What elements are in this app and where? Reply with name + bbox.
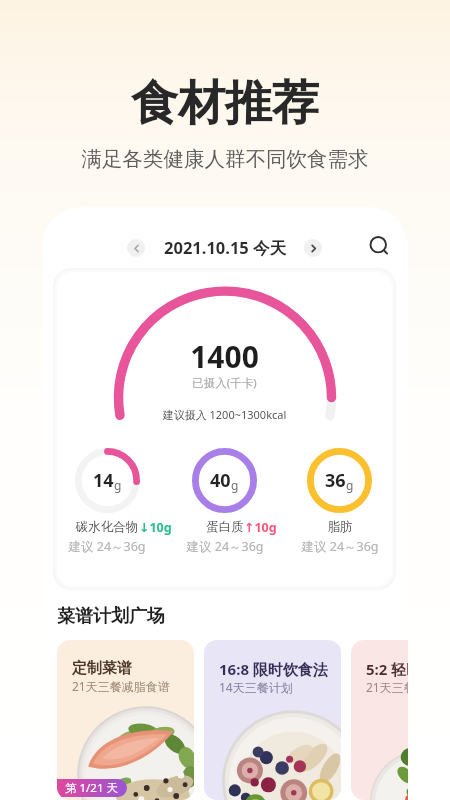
button[interactable]: Next day — [304, 239, 322, 257]
staticText: 建议摄入 1200~1300kcal — [57, 407, 392, 422]
staticText: 已摄入(千卡) — [57, 375, 392, 391]
staticText: 21天三餐减脂食谱 — [72, 678, 170, 694]
staticText: 定制菜谱 — [72, 659, 132, 678]
staticText: g — [231, 477, 239, 493]
staticText: 满足各类健康人群不同饮食需求 — [0, 146, 450, 172]
staticText: ↓10g — [139, 519, 172, 536]
staticText: 14天三餐计划 — [219, 679, 293, 695]
staticText: 建议 24～36g — [165, 538, 285, 555]
staticText: 第 1/21 天 — [65, 780, 118, 796]
staticText: 36 — [325, 468, 346, 493]
staticText: 5:2 轻断 — [366, 659, 408, 679]
staticText: 1400 — [57, 336, 392, 377]
staticText: 菜谱计划广场 — [57, 605, 165, 628]
button[interactable]: 5:2 轻断 — [351, 640, 408, 800]
staticText: 碳水化合物 — [57, 519, 167, 535]
staticText: 建议 24～36g — [280, 538, 392, 555]
staticText: 建议 24～36g — [57, 538, 167, 555]
staticText: 脂肪 — [280, 519, 392, 535]
staticText: 蛋白质 — [165, 519, 285, 535]
staticText: g — [346, 477, 354, 493]
staticText: 14 — [93, 468, 114, 493]
button[interactable]: 定制菜谱 — [57, 640, 194, 800]
staticText: 16:8 限时饮食法 — [219, 659, 328, 679]
staticText: 21天三餐 — [366, 679, 408, 695]
staticText: 40 — [210, 468, 231, 493]
staticText: 2021.10.15 今天 — [164, 236, 287, 259]
staticText: ↑10g — [244, 519, 277, 536]
button[interactable]: Search — [364, 230, 395, 261]
staticText: 食材推荐 — [0, 74, 450, 133]
staticText: g — [114, 477, 122, 493]
button[interactable]: 16:8 限时饮食法 — [204, 640, 341, 800]
button[interactable]: Previous day — [127, 239, 145, 257]
